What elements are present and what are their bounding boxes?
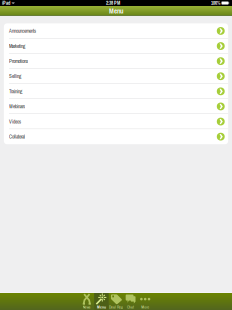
staticText: 2:38 PM bbox=[106, 0, 120, 6]
staticText: Webinars bbox=[9, 103, 25, 110]
button[interactable]: Announcements bbox=[4, 23, 228, 38]
staticText: Deal Reg bbox=[109, 304, 123, 310]
staticText: 100% bbox=[211, 0, 220, 6]
button[interactable]: Deal Reg bbox=[109, 293, 123, 310]
button[interactable]: Collateral bbox=[4, 129, 228, 144]
button[interactable]: Training bbox=[4, 84, 228, 99]
button[interactable]: Promotions bbox=[4, 54, 228, 69]
button[interactable]: Webinars bbox=[4, 99, 228, 114]
staticText: Marketing bbox=[9, 43, 25, 49]
staticText: Announcements bbox=[9, 27, 36, 34]
staticText: Training bbox=[9, 88, 22, 95]
staticText: Menu bbox=[97, 304, 106, 310]
button[interactable]: Chat bbox=[123, 293, 138, 310]
button[interactable]: Menu bbox=[94, 293, 109, 310]
staticText: Videos bbox=[9, 118, 21, 125]
button[interactable]: News bbox=[79, 293, 94, 310]
staticText: More bbox=[141, 304, 149, 310]
button[interactable]: More bbox=[138, 293, 152, 310]
button[interactable]: Selling bbox=[4, 69, 228, 84]
staticText: Selling bbox=[9, 73, 21, 80]
staticText: Menu bbox=[109, 6, 123, 15]
staticText: iPad bbox=[2, 0, 10, 6]
staticText: News bbox=[83, 304, 91, 310]
staticText: Chat bbox=[127, 304, 134, 310]
button[interactable]: Marketing bbox=[4, 38, 228, 54]
staticText: Promotions bbox=[9, 58, 28, 64]
staticText: Collateral bbox=[9, 133, 25, 140]
button[interactable]: Videos bbox=[4, 114, 228, 129]
